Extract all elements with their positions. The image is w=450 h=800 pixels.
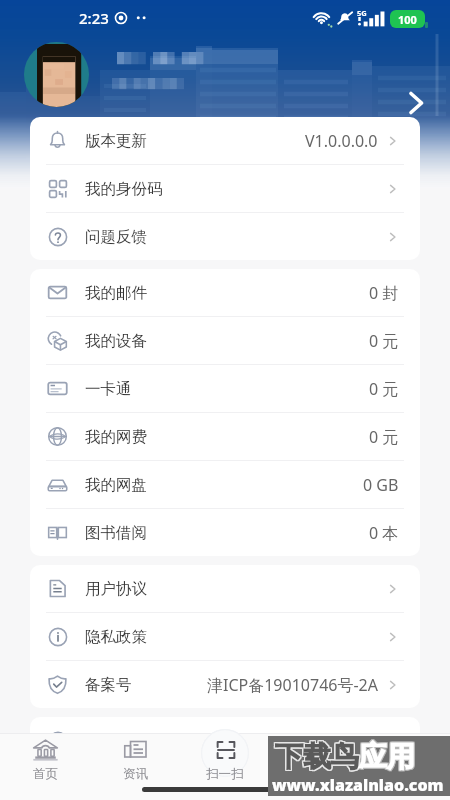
staticText: 0 元	[369, 330, 399, 352]
staticText: 版本更新	[85, 131, 147, 151]
staticText: 下载鸟	[275, 738, 359, 773]
button[interactable]: Profile detail	[396, 83, 436, 123]
staticText: 应用	[360, 740, 416, 775]
staticText: 图书借阅	[85, 523, 147, 543]
button[interactable]: 版本更新	[30, 117, 420, 164]
staticText: 下载鸟	[274, 739, 358, 774]
staticText: 应用	[360, 739, 416, 774]
staticText: 应用	[358, 740, 414, 775]
staticText: 下载鸟	[276, 740, 360, 775]
staticText: 应用	[358, 738, 414, 773]
staticText: 应用	[360, 738, 416, 773]
staticText: 下载鸟	[274, 740, 358, 775]
staticText: 5G	[357, 8, 367, 18]
staticText: 备案号	[85, 675, 132, 695]
staticText: 0 本	[369, 522, 399, 544]
staticText: 0 封	[369, 282, 399, 304]
staticText: 关于我们	[85, 731, 147, 751]
staticText: 下载鸟	[276, 739, 360, 774]
staticText: 津ICP备19010746号-2A	[207, 674, 378, 696]
staticText: 0 元	[369, 426, 399, 448]
button[interactable]: 关于我们	[30, 717, 420, 764]
staticText: 我的身份码	[85, 179, 163, 199]
button[interactable]: 我的网盘	[30, 461, 420, 508]
staticText: 我的设备	[85, 331, 147, 351]
button[interactable]: 我的网费	[30, 413, 420, 460]
button[interactable]: Avatar	[24, 42, 89, 107]
button[interactable]: 用户协议	[30, 565, 420, 612]
staticText: 下载鸟	[275, 740, 359, 775]
staticText: 我的邮件	[85, 283, 147, 303]
button[interactable]: 扫一扫	[190, 734, 260, 782]
staticText: 0 GB	[363, 474, 399, 496]
staticText: 下载鸟	[275, 739, 359, 774]
staticText: 应用	[359, 740, 415, 775]
button[interactable]: 备案号	[30, 661, 420, 708]
staticText: 问题反馈	[85, 227, 147, 247]
staticText: V1.0.0.0.0	[305, 130, 378, 152]
staticText: 应用	[359, 739, 415, 774]
staticText: 首页	[33, 766, 58, 782]
button[interactable]: 资讯	[100, 734, 170, 782]
button[interactable]: 问题反馈	[30, 213, 420, 260]
staticText: 100	[398, 12, 417, 27]
button[interactable]: 图书借阅	[30, 509, 420, 556]
staticText: 我的网盘	[85, 475, 147, 495]
button[interactable]: 首页	[10, 734, 80, 782]
staticText: 隐私政策	[85, 627, 147, 647]
staticText: 应用	[359, 738, 415, 773]
staticText: 0 元	[369, 378, 399, 400]
staticText: 应用	[358, 739, 414, 774]
staticText: www.xlazalnlao.com	[272, 774, 444, 796]
staticText: 扫一扫	[206, 766, 244, 782]
staticText: 一卡通	[85, 379, 132, 399]
button[interactable]: 我的身份码	[30, 165, 420, 212]
staticText: 下载鸟	[274, 738, 358, 773]
button[interactable]: 一卡通	[30, 365, 420, 412]
button[interactable]: 我的设备	[30, 317, 420, 364]
button[interactable]: 隐私政策	[30, 613, 420, 660]
staticText: 用户协议	[85, 579, 147, 599]
staticText: 下载鸟	[276, 738, 360, 773]
staticText: 我的网费	[85, 427, 147, 447]
button[interactable]: 我的邮件	[30, 269, 420, 316]
staticText: 资讯	[123, 766, 148, 782]
staticText: 2:23	[79, 8, 109, 28]
